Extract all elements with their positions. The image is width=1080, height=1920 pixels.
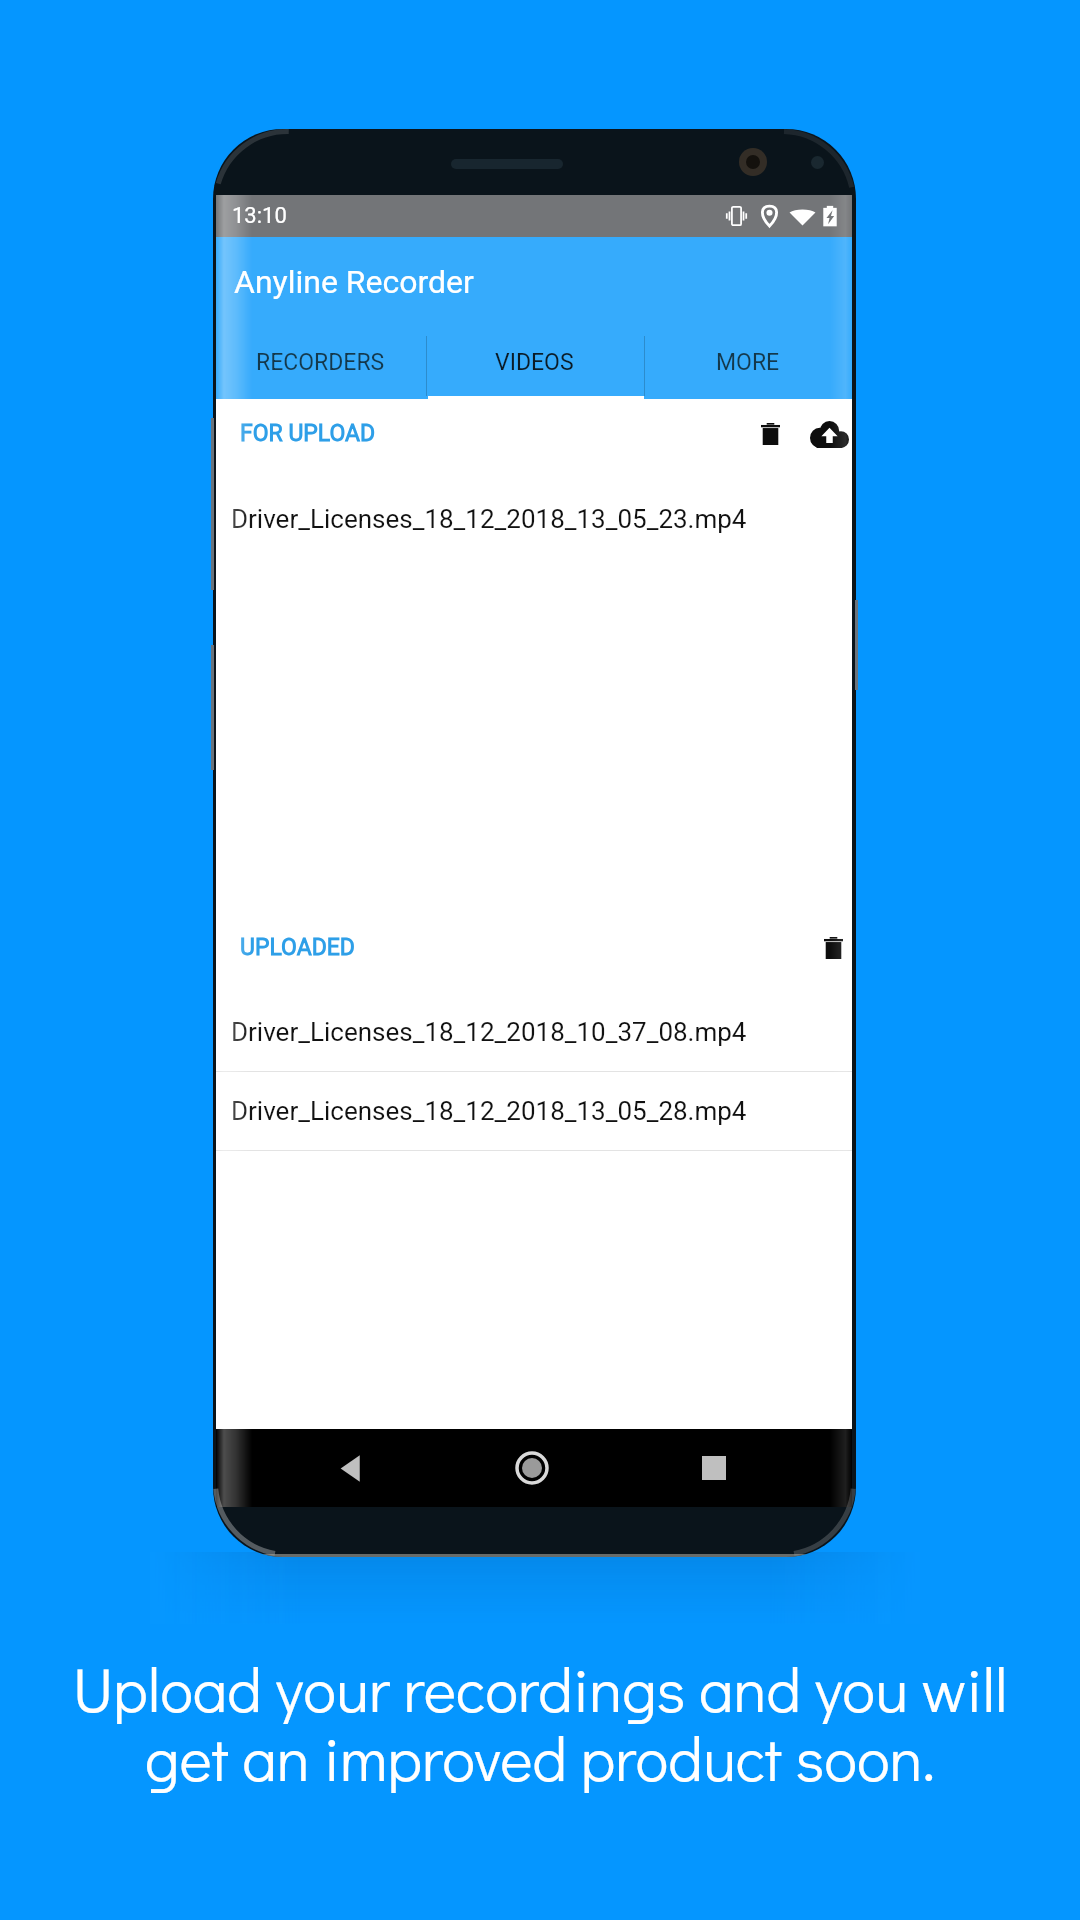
staticText: RECORDERS xyxy=(256,349,385,376)
button[interactable]: Delete xyxy=(748,412,792,456)
button[interactable]: Driver_Licenses_18_12_2018_10_37_08.mp4 xyxy=(216,993,852,1071)
button[interactable]: Delete xyxy=(811,926,855,970)
button[interactable]: VIDEOS xyxy=(425,328,644,399)
staticText: Anyline Recorder xyxy=(234,263,474,301)
button[interactable]: RECORDERS xyxy=(216,328,425,399)
button[interactable]: Upload xyxy=(807,412,851,456)
staticText: UPLOADED xyxy=(240,934,355,961)
staticText: Driver_Licenses_18_12_2018_13_05_28.mp4 xyxy=(231,1096,747,1126)
staticText: FOR UPLOAD xyxy=(240,420,376,447)
staticText: Driver_Licenses_18_12_2018_13_05_23.mp4 xyxy=(231,504,747,534)
staticText: VIDEOS xyxy=(495,349,574,376)
button[interactable]: MORE xyxy=(644,328,852,399)
button[interactable]: Recents xyxy=(684,1438,744,1498)
staticText: Upload your recordings and you will get … xyxy=(0,1648,1080,1797)
staticText: MORE xyxy=(716,349,780,376)
staticText: 13:10 xyxy=(232,203,287,229)
staticText: Driver_Licenses_18_12_2018_10_37_08.mp4 xyxy=(231,1017,747,1047)
button[interactable]: Driver_Licenses_18_12_2018_13_05_28.mp4 xyxy=(216,1072,852,1150)
button[interactable]: Back xyxy=(320,1438,380,1498)
button[interactable]: Home xyxy=(502,1438,562,1498)
button[interactable]: Driver_Licenses_18_12_2018_13_05_23.mp4 xyxy=(216,480,852,558)
